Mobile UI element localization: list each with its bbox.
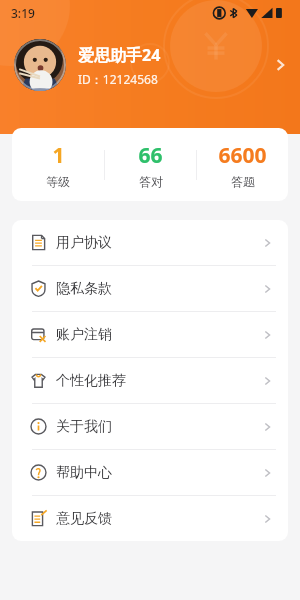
staticText: 3:19 (11, 5, 35, 21)
button[interactable]: 爱思助手24 (0, 30, 300, 100)
staticText: 66 (138, 141, 163, 170)
other: Profile details (270, 55, 290, 75)
staticText: 6600 (218, 141, 267, 170)
button[interactable]: 个性化推荐 (12, 358, 288, 403)
button[interactable]: 帮助中心 (12, 450, 288, 495)
button[interactable]: 账户注销 (12, 312, 288, 357)
staticText: 答对 (139, 174, 163, 189)
staticText: 用户协议 (56, 234, 112, 252)
staticText: 帮助中心 (56, 464, 112, 482)
button[interactable]: 意见反馈 (12, 496, 288, 541)
staticText: 关于我们 (56, 418, 112, 436)
staticText: 1 (52, 141, 65, 170)
button[interactable]: 关于我们 (12, 404, 288, 449)
staticText: 意见反馈 (56, 510, 112, 528)
staticText: 等级 (46, 174, 70, 189)
staticText: ID：12124568 (78, 71, 158, 87)
staticText: 答题 (231, 174, 255, 189)
staticText: 爱思助手24 (78, 44, 161, 66)
button[interactable]: 1 (12, 141, 104, 189)
button[interactable]: 用户协议 (12, 220, 288, 265)
button[interactable]: 隐私条款 (12, 266, 288, 311)
staticText: 个性化推荐 (56, 372, 126, 390)
button[interactable]: 66 (105, 141, 196, 189)
staticText: 隐私条款 (56, 280, 112, 298)
button[interactable]: 6600 (197, 141, 288, 189)
staticText: 账户注销 (56, 326, 112, 344)
